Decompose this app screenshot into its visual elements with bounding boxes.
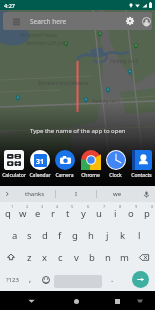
staticText: i [114,207,117,220]
button[interactable]: Shift [0,246,22,268]
button[interactable]: a [7,224,22,246]
staticText: g [72,229,78,242]
staticText: a [12,229,18,242]
button[interactable]: , [23,268,38,291]
button[interactable]: I [56,186,96,202]
button[interactable]: Emoji [38,268,53,291]
staticText: l [138,229,141,242]
button[interactable]: f [52,224,67,246]
staticText: Shoreline Amphitheatre [38,80,89,86]
button[interactable]: Menu [3,12,152,30]
button[interactable]: Back [22,292,40,310]
staticText: we [113,190,122,198]
staticText: . [111,273,114,284]
staticText: d [42,229,48,242]
staticText: b [89,251,95,264]
staticText: Chrome [81,172,100,179]
staticText: Shoreline Golf Links [26,40,68,46]
button[interactable]: Backspace [132,246,155,268]
button[interactable]: we [97,186,137,202]
staticText: 3 [41,204,44,209]
button[interactable]: t [60,202,75,224]
staticText: Search here [30,17,67,26]
button[interactable]: Chrome [78,150,103,179]
staticText: 6 [87,204,90,209]
staticText: q [5,207,11,220]
button[interactable]: s [22,224,37,246]
button[interactable]: Contacts [129,150,154,179]
staticText: y [81,207,86,220]
staticText: c [58,251,63,264]
staticText: 1 [11,204,14,209]
staticText: j [106,229,109,242]
button[interactable]: 31 [27,150,52,179]
button[interactable]: k [115,224,131,246]
button[interactable]: Settings [123,14,137,28]
staticText: 7 [103,204,106,209]
button[interactable]: w [15,202,30,224]
button[interactable]: Enter [132,271,149,288]
staticText: thanks [25,190,45,198]
button[interactable]: g [67,224,83,246]
staticText: 0 [151,204,154,209]
button[interactable]: d [37,224,52,246]
button[interactable]: e [30,202,45,224]
button[interactable]: Home [67,292,85,310]
staticText: p [144,207,150,220]
staticText: ?123 [6,276,19,284]
button[interactable]: Voice input [137,186,155,202]
button[interactable]: y [75,202,91,224]
button[interactable]: z [22,246,37,268]
staticText: w [19,207,27,220]
staticText: v [74,251,79,264]
staticText: Type the name of the app to open [30,127,126,135]
button[interactable]: Account [139,14,152,28]
staticText: 5 [71,204,74,209]
button[interactable]: m [116,246,132,268]
staticText: Clock [109,172,122,179]
button[interactable]: v [68,246,84,268]
staticText: m [120,251,129,264]
button[interactable]: x [37,246,52,268]
button[interactable]: thanks [14,186,55,202]
button[interactable]: Recents [108,292,126,310]
button[interactable]: q [0,202,15,224]
button[interactable]: u [91,202,107,224]
staticText: Calculator [2,172,26,179]
staticText: z [27,251,32,264]
staticText: Camera [55,172,74,179]
button[interactable]: o [123,202,139,224]
button[interactable]: c [52,246,68,268]
staticText: 4:27 [4,2,15,9]
staticText: o [128,207,134,220]
staticText: I [75,190,78,198]
button[interactable]: h [83,224,99,246]
staticText: Contacts [131,172,152,179]
staticText: 2 [26,204,29,209]
button[interactable]: More suggestions [0,186,14,202]
button[interactable]: p [139,202,155,224]
button[interactable]: r [45,202,60,224]
button[interactable]: l [131,224,147,246]
button[interactable]: Clock [103,150,128,179]
button[interactable]: Switch keyboard [132,293,148,309]
staticText: s [27,229,32,242]
button[interactable]: Calculator [1,150,26,179]
staticText: t [66,207,70,220]
staticText: 4 [56,204,59,209]
staticText: f [58,229,62,242]
button[interactable]: Camera [52,150,77,179]
staticText: e [35,207,41,220]
staticText: Parking Lot B [110,58,139,64]
staticText: x [42,251,48,264]
staticText: , [29,273,32,284]
button[interactable]: n [100,246,116,268]
button[interactable]: b [84,246,100,268]
button[interactable]: j [99,224,115,246]
button[interactable]: . [104,268,120,291]
button[interactable]: i [107,202,123,224]
button[interactable]: ?123 [1,268,24,291]
staticText: Parking Lot C [92,98,121,104]
